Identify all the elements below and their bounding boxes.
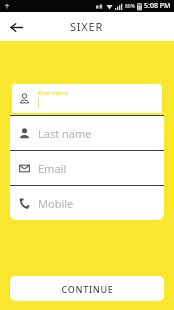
button[interactable]: CONTINUE [10,276,164,301]
staticText: CONTINUE [61,283,114,295]
staticText: 80% [125,3,135,10]
button[interactable]: Mobile field [10,186,164,220]
button[interactable]: First name field [10,82,164,115]
button[interactable]: Back [5,16,27,38]
staticText: First name [38,89,68,97]
staticText: Mobile [38,196,74,211]
button[interactable]: Last name field [10,116,164,150]
staticText: Last name [38,126,92,141]
staticText: 5:08 PM [144,1,171,11]
staticText: Email [38,161,67,176]
button[interactable]: Email field [10,151,164,185]
staticText: SIXER [70,19,104,34]
